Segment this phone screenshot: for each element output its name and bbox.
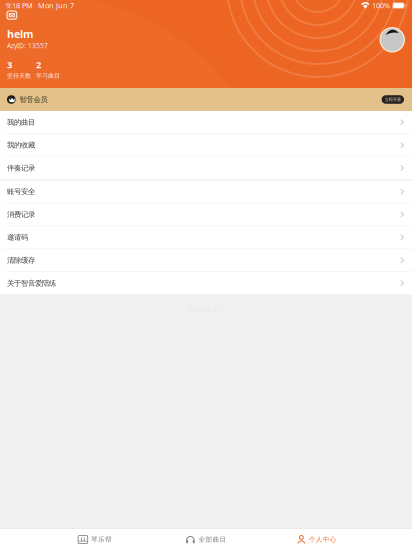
button[interactable]: 琴乐帮 xyxy=(39,529,150,550)
button[interactable]: 邀请码 xyxy=(0,226,412,249)
button[interactable]: 我的收藏 xyxy=(0,134,412,156)
staticText: 邀请码 xyxy=(7,233,28,242)
staticText: 智音会员 xyxy=(20,95,48,104)
button[interactable]: 个人中心 xyxy=(261,529,372,550)
staticText: 伴奏记录 xyxy=(7,163,35,173)
button[interactable]: 消费记录 xyxy=(0,203,412,226)
button[interactable]: Messages xyxy=(7,11,17,19)
staticText: 我的曲目 xyxy=(7,118,35,127)
button[interactable]: 全部曲目 xyxy=(150,529,261,550)
staticText: 坚持天数 xyxy=(7,72,31,80)
staticText: 100% xyxy=(372,0,390,10)
staticText: 关于智音爱陪练 xyxy=(7,279,56,288)
staticText: 3 xyxy=(7,58,12,71)
button[interactable]: 关于智音爱陪练 xyxy=(0,272,412,294)
button[interactable]: 伴奏记录 xyxy=(0,157,412,179)
staticText: 全部曲目 xyxy=(198,535,226,544)
staticText: 消费记录 xyxy=(7,210,35,219)
staticText: Mon Jun 7 xyxy=(38,0,74,10)
staticText: 个人中心 xyxy=(309,535,337,544)
staticText: 账号安全 xyxy=(7,187,35,196)
staticText: 立即开通 xyxy=(385,97,401,102)
button[interactable]: 智音会员 xyxy=(0,88,412,111)
staticText: 清除缓存 xyxy=(7,256,35,265)
button[interactable]: 我的曲目 xyxy=(0,111,412,133)
staticText: 9:18 PM xyxy=(6,0,33,10)
staticText: 琴乐帮 xyxy=(91,535,112,544)
staticText: 2 xyxy=(36,58,41,71)
staticText: AzyID: 13557 xyxy=(7,41,48,50)
staticText: 学习曲目 xyxy=(36,72,60,80)
button[interactable]: 账号安全 xyxy=(0,180,412,203)
button[interactable]: 清除缓存 xyxy=(0,249,412,271)
staticText: 我的收藏 xyxy=(7,140,35,150)
staticText: helm xyxy=(7,27,33,41)
